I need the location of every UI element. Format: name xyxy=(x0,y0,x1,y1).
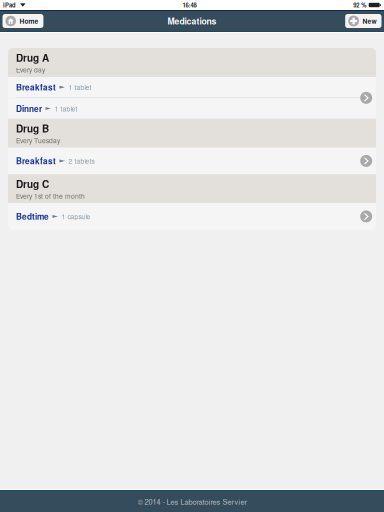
staticText: Medications xyxy=(167,15,216,27)
button[interactable]: New xyxy=(345,14,381,28)
staticText: Every Tuesday xyxy=(16,135,60,145)
staticText: © 2014 - Les Laboratoires Servier xyxy=(137,496,246,507)
staticText: 1 capsule xyxy=(61,212,90,221)
staticText: 16:48 xyxy=(182,1,196,9)
staticText: Drug B xyxy=(16,121,49,135)
staticText: iPad xyxy=(3,1,16,9)
staticText: New xyxy=(362,16,376,26)
button[interactable]: Drug A xyxy=(8,77,376,119)
staticText: Breakfast xyxy=(16,155,56,167)
staticText: Dinner xyxy=(16,103,42,114)
staticText: 1 tablet xyxy=(54,104,77,113)
staticText: 92 % xyxy=(353,1,366,9)
staticText: Every 1st of the month xyxy=(16,191,85,201)
button[interactable]: Drug C xyxy=(8,203,376,230)
staticText: Home xyxy=(19,16,38,26)
button[interactable]: Drug B xyxy=(8,148,376,174)
staticText: Drug C xyxy=(16,177,49,191)
staticText: Bedtime xyxy=(16,210,49,222)
staticText: Every day xyxy=(16,65,45,74)
button[interactable]: Home xyxy=(2,14,43,28)
staticText: Drug A xyxy=(16,50,49,65)
staticText: Breakfast xyxy=(16,81,56,93)
staticText: 1 tablet xyxy=(68,82,91,92)
staticText: 2 tablets xyxy=(68,156,94,166)
